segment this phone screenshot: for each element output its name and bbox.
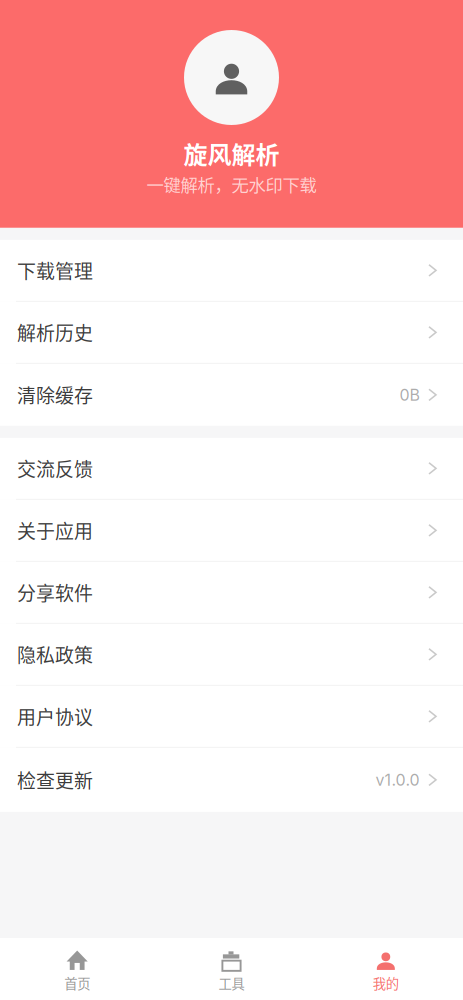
button[interactable]: 工具 <box>154 938 309 1000</box>
staticText: 解析历史 <box>17 319 93 346</box>
button[interactable]: 隐私政策 <box>0 624 463 686</box>
button[interactable]: 关于应用 <box>0 500 463 562</box>
staticText: 用户协议 <box>17 703 93 730</box>
button[interactable]: 交流反馈 <box>0 438 463 500</box>
staticText: 旋风解析 <box>183 136 279 171</box>
staticText: 下载管理 <box>17 257 93 284</box>
staticText: 关于应用 <box>17 517 93 544</box>
staticText: 分享软件 <box>17 579 93 606</box>
button[interactable]: 用户协议 <box>0 686 463 748</box>
staticText: 一键解析，无水印下载 <box>146 172 316 197</box>
button[interactable]: 首页 <box>0 938 154 1000</box>
button[interactable]: 我的 <box>309 938 463 1000</box>
button[interactable]: 检查更新 <box>0 748 463 812</box>
staticText: 我的 <box>373 973 399 993</box>
button[interactable]: 解析历史 <box>0 302 463 364</box>
button[interactable]: 下载管理 <box>0 240 463 302</box>
button[interactable]: 清除缓存 <box>0 364 463 426</box>
button[interactable]: 分享软件 <box>0 562 463 624</box>
staticText: 0B <box>399 385 419 405</box>
staticText: 交流反馈 <box>17 455 93 482</box>
staticText: 清除缓存 <box>17 381 93 408</box>
staticText: v1.0.0 <box>375 770 419 790</box>
staticText: 检查更新 <box>17 766 93 793</box>
staticText: 首页 <box>64 973 90 993</box>
staticText: 隐私政策 <box>17 641 93 668</box>
staticText: 工具 <box>218 973 244 993</box>
